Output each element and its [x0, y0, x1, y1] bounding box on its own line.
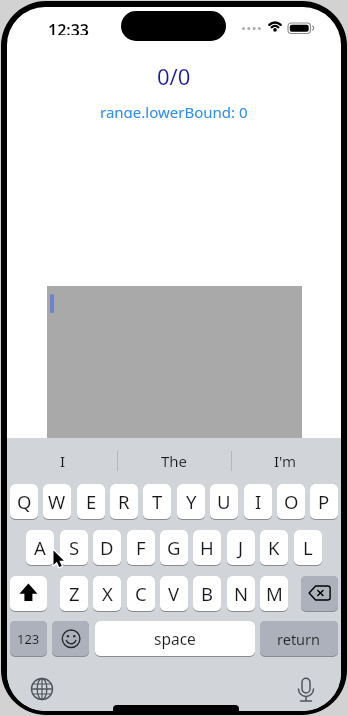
staticText: 12:33 [48, 19, 90, 35]
staticText: 0/0 [157, 61, 191, 91]
staticText: space [154, 628, 196, 649]
staticText: U [217, 489, 231, 514]
staticText: D [100, 535, 114, 560]
staticText: O [284, 489, 299, 514]
staticText: X [102, 581, 113, 606]
staticText: M [266, 581, 283, 606]
staticText: C [135, 581, 147, 606]
staticText: J [238, 535, 244, 560]
staticText: I [60, 451, 66, 471]
staticText: T [152, 489, 163, 514]
staticText: A [34, 535, 46, 560]
staticText: return [277, 629, 321, 649]
staticText: S [69, 535, 80, 560]
staticText: I [255, 489, 262, 514]
staticText: range.lowerBound: 0 [100, 102, 248, 118]
staticText: H [200, 535, 214, 560]
staticText: N [234, 581, 249, 606]
staticText: 123 [17, 630, 40, 648]
staticText: R [118, 489, 130, 514]
staticText: B [201, 581, 214, 606]
staticText: Y [186, 489, 197, 514]
staticText: W [48, 489, 66, 514]
staticText: The [161, 451, 188, 471]
staticText: K [268, 535, 280, 560]
staticText: L [303, 535, 313, 560]
staticText: G [167, 535, 181, 560]
staticText: P [318, 489, 330, 514]
staticText: Z [69, 581, 80, 606]
staticText: Q [17, 489, 32, 514]
staticText: E [86, 489, 97, 514]
staticText: V [168, 581, 180, 606]
staticText: I'm [274, 451, 297, 471]
staticText: F [136, 535, 146, 560]
